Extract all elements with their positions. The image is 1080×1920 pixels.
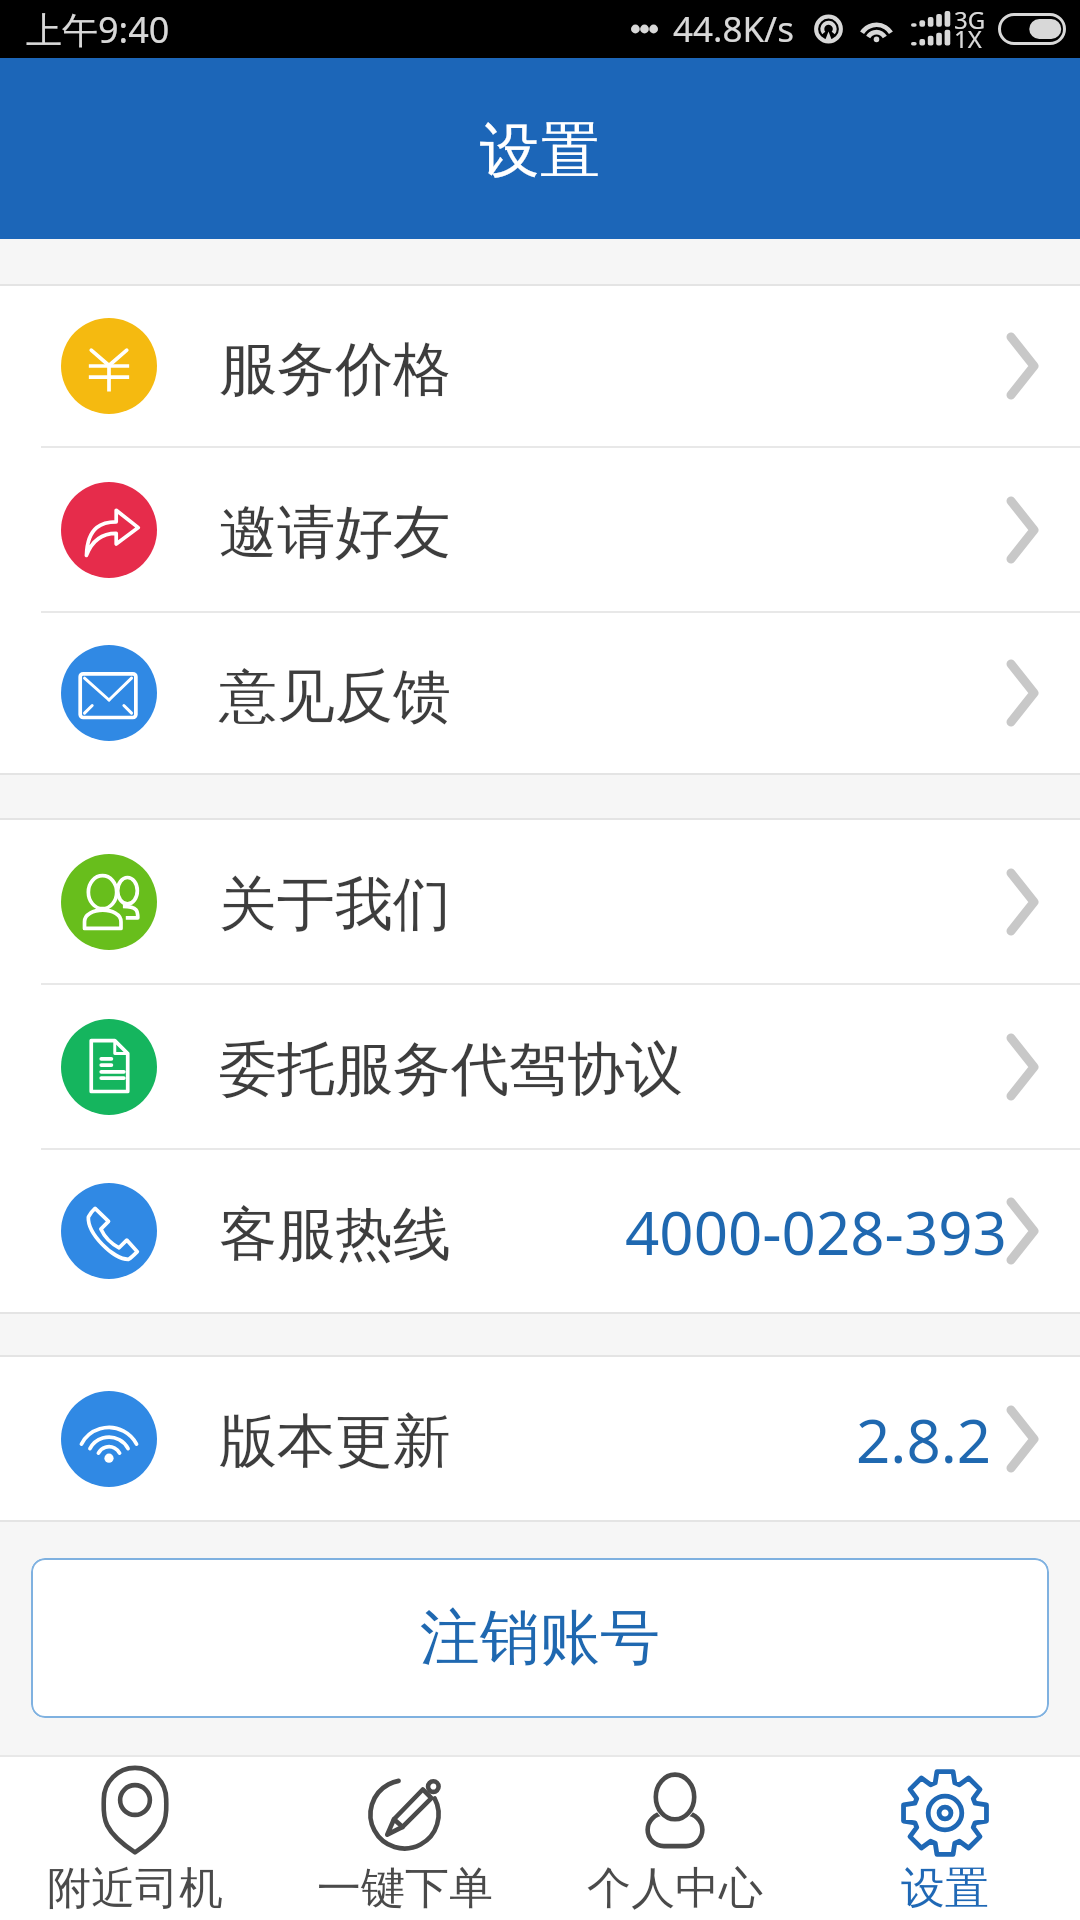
button[interactable]: Nearby drivers (0, 1757, 270, 1920)
button[interactable]: Settings (810, 1757, 1080, 1920)
staticText: 3G (954, 3, 986, 36)
staticText: 注销账号 (420, 1600, 660, 1676)
staticText: 版本更新 (219, 1405, 451, 1478)
staticText: 4000-028-393 (625, 1191, 1007, 1273)
staticText: 上午9:40 (26, 5, 170, 54)
staticText: 设置 (901, 1861, 989, 1916)
staticText: 2.8.2 (856, 1399, 992, 1481)
button[interactable]: Profile (540, 1757, 810, 1920)
staticText: 1X (954, 22, 982, 55)
button[interactable]: 注销账号 (31, 1558, 1049, 1718)
staticText: 44.8K/s (673, 5, 794, 53)
button[interactable]: 客服热线 (0, 1150, 1080, 1312)
staticText: 个人中心 (587, 1861, 763, 1916)
button[interactable]: 关于我们 (0, 820, 1080, 983)
staticText: 委托服务代驾协议 (219, 1033, 683, 1106)
button[interactable]: 邀请好友 (0, 448, 1080, 611)
button[interactable]: 版本更新 (0, 1357, 1080, 1520)
staticText: 关于我们 (219, 868, 451, 941)
button[interactable]: 服务价格 (0, 286, 1080, 446)
staticText: 设置 (480, 113, 600, 189)
staticText: 服务价格 (219, 333, 451, 406)
staticText: 意见反馈 (219, 660, 451, 733)
staticText: 一键下单 (317, 1861, 493, 1916)
button[interactable]: One-tap order (270, 1757, 540, 1920)
staticText: 邀请好友 (219, 496, 451, 569)
staticText: 附近司机 (47, 1861, 223, 1916)
button[interactable]: 委托服务代驾协议 (0, 985, 1080, 1148)
staticText: 客服热线 (219, 1198, 451, 1271)
button[interactable]: 意见反馈 (0, 613, 1080, 773)
